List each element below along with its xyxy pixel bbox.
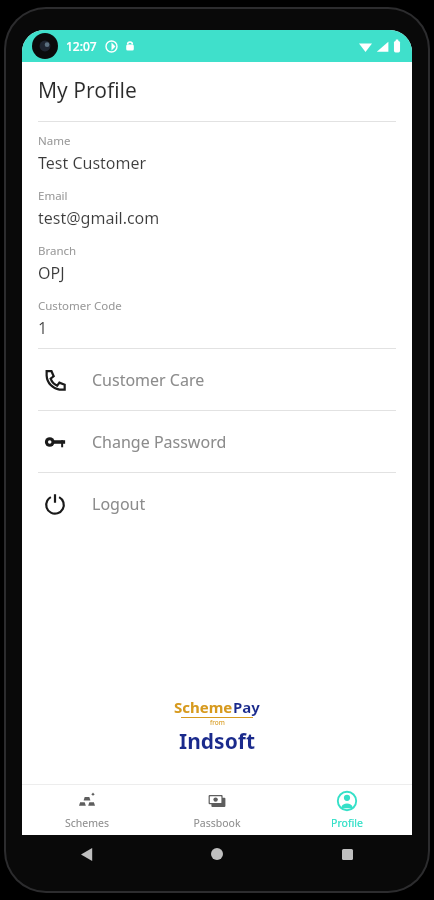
staticText: Customer Code bbox=[38, 298, 122, 314]
staticText: test@gmail.com bbox=[38, 207, 160, 229]
staticText: Profile bbox=[331, 816, 363, 830]
staticText: from bbox=[210, 718, 225, 727]
staticText: Scheme bbox=[174, 697, 233, 717]
button[interactable]: Logout bbox=[22, 473, 412, 534]
button[interactable]: Back bbox=[72, 839, 102, 869]
button[interactable]: Email bbox=[22, 177, 412, 232]
button[interactable]: Branch bbox=[22, 232, 412, 287]
staticText: Passbook bbox=[193, 816, 241, 830]
button[interactable]: Customer Care bbox=[22, 349, 412, 410]
staticText: Pay bbox=[233, 697, 260, 717]
button[interactable]: Change Password bbox=[22, 411, 412, 472]
staticText: Branch bbox=[38, 243, 77, 259]
button[interactable]: Passbook bbox=[152, 785, 282, 835]
staticText: Schemes bbox=[65, 816, 109, 830]
staticText: Name bbox=[38, 133, 71, 149]
staticText: Email bbox=[38, 188, 68, 204]
staticText: 12:07 bbox=[66, 38, 97, 54]
button[interactable]: Recent apps bbox=[332, 839, 362, 869]
staticText: Test Customer bbox=[38, 152, 147, 174]
staticText: Change Password bbox=[92, 431, 227, 453]
staticText: Customer Care bbox=[92, 369, 205, 391]
staticText: My Profile bbox=[38, 76, 137, 105]
staticText: Logout bbox=[92, 493, 146, 515]
button[interactable]: Name bbox=[22, 122, 412, 177]
button[interactable]: Customer Code bbox=[22, 287, 412, 342]
button[interactable]: Home bbox=[202, 839, 232, 869]
staticText: OPJ bbox=[38, 262, 65, 284]
button[interactable]: Profile bbox=[282, 785, 412, 835]
button[interactable]: Schemes bbox=[22, 785, 152, 835]
staticText: Indsoft bbox=[179, 727, 255, 756]
staticText: 1 bbox=[38, 317, 48, 339]
